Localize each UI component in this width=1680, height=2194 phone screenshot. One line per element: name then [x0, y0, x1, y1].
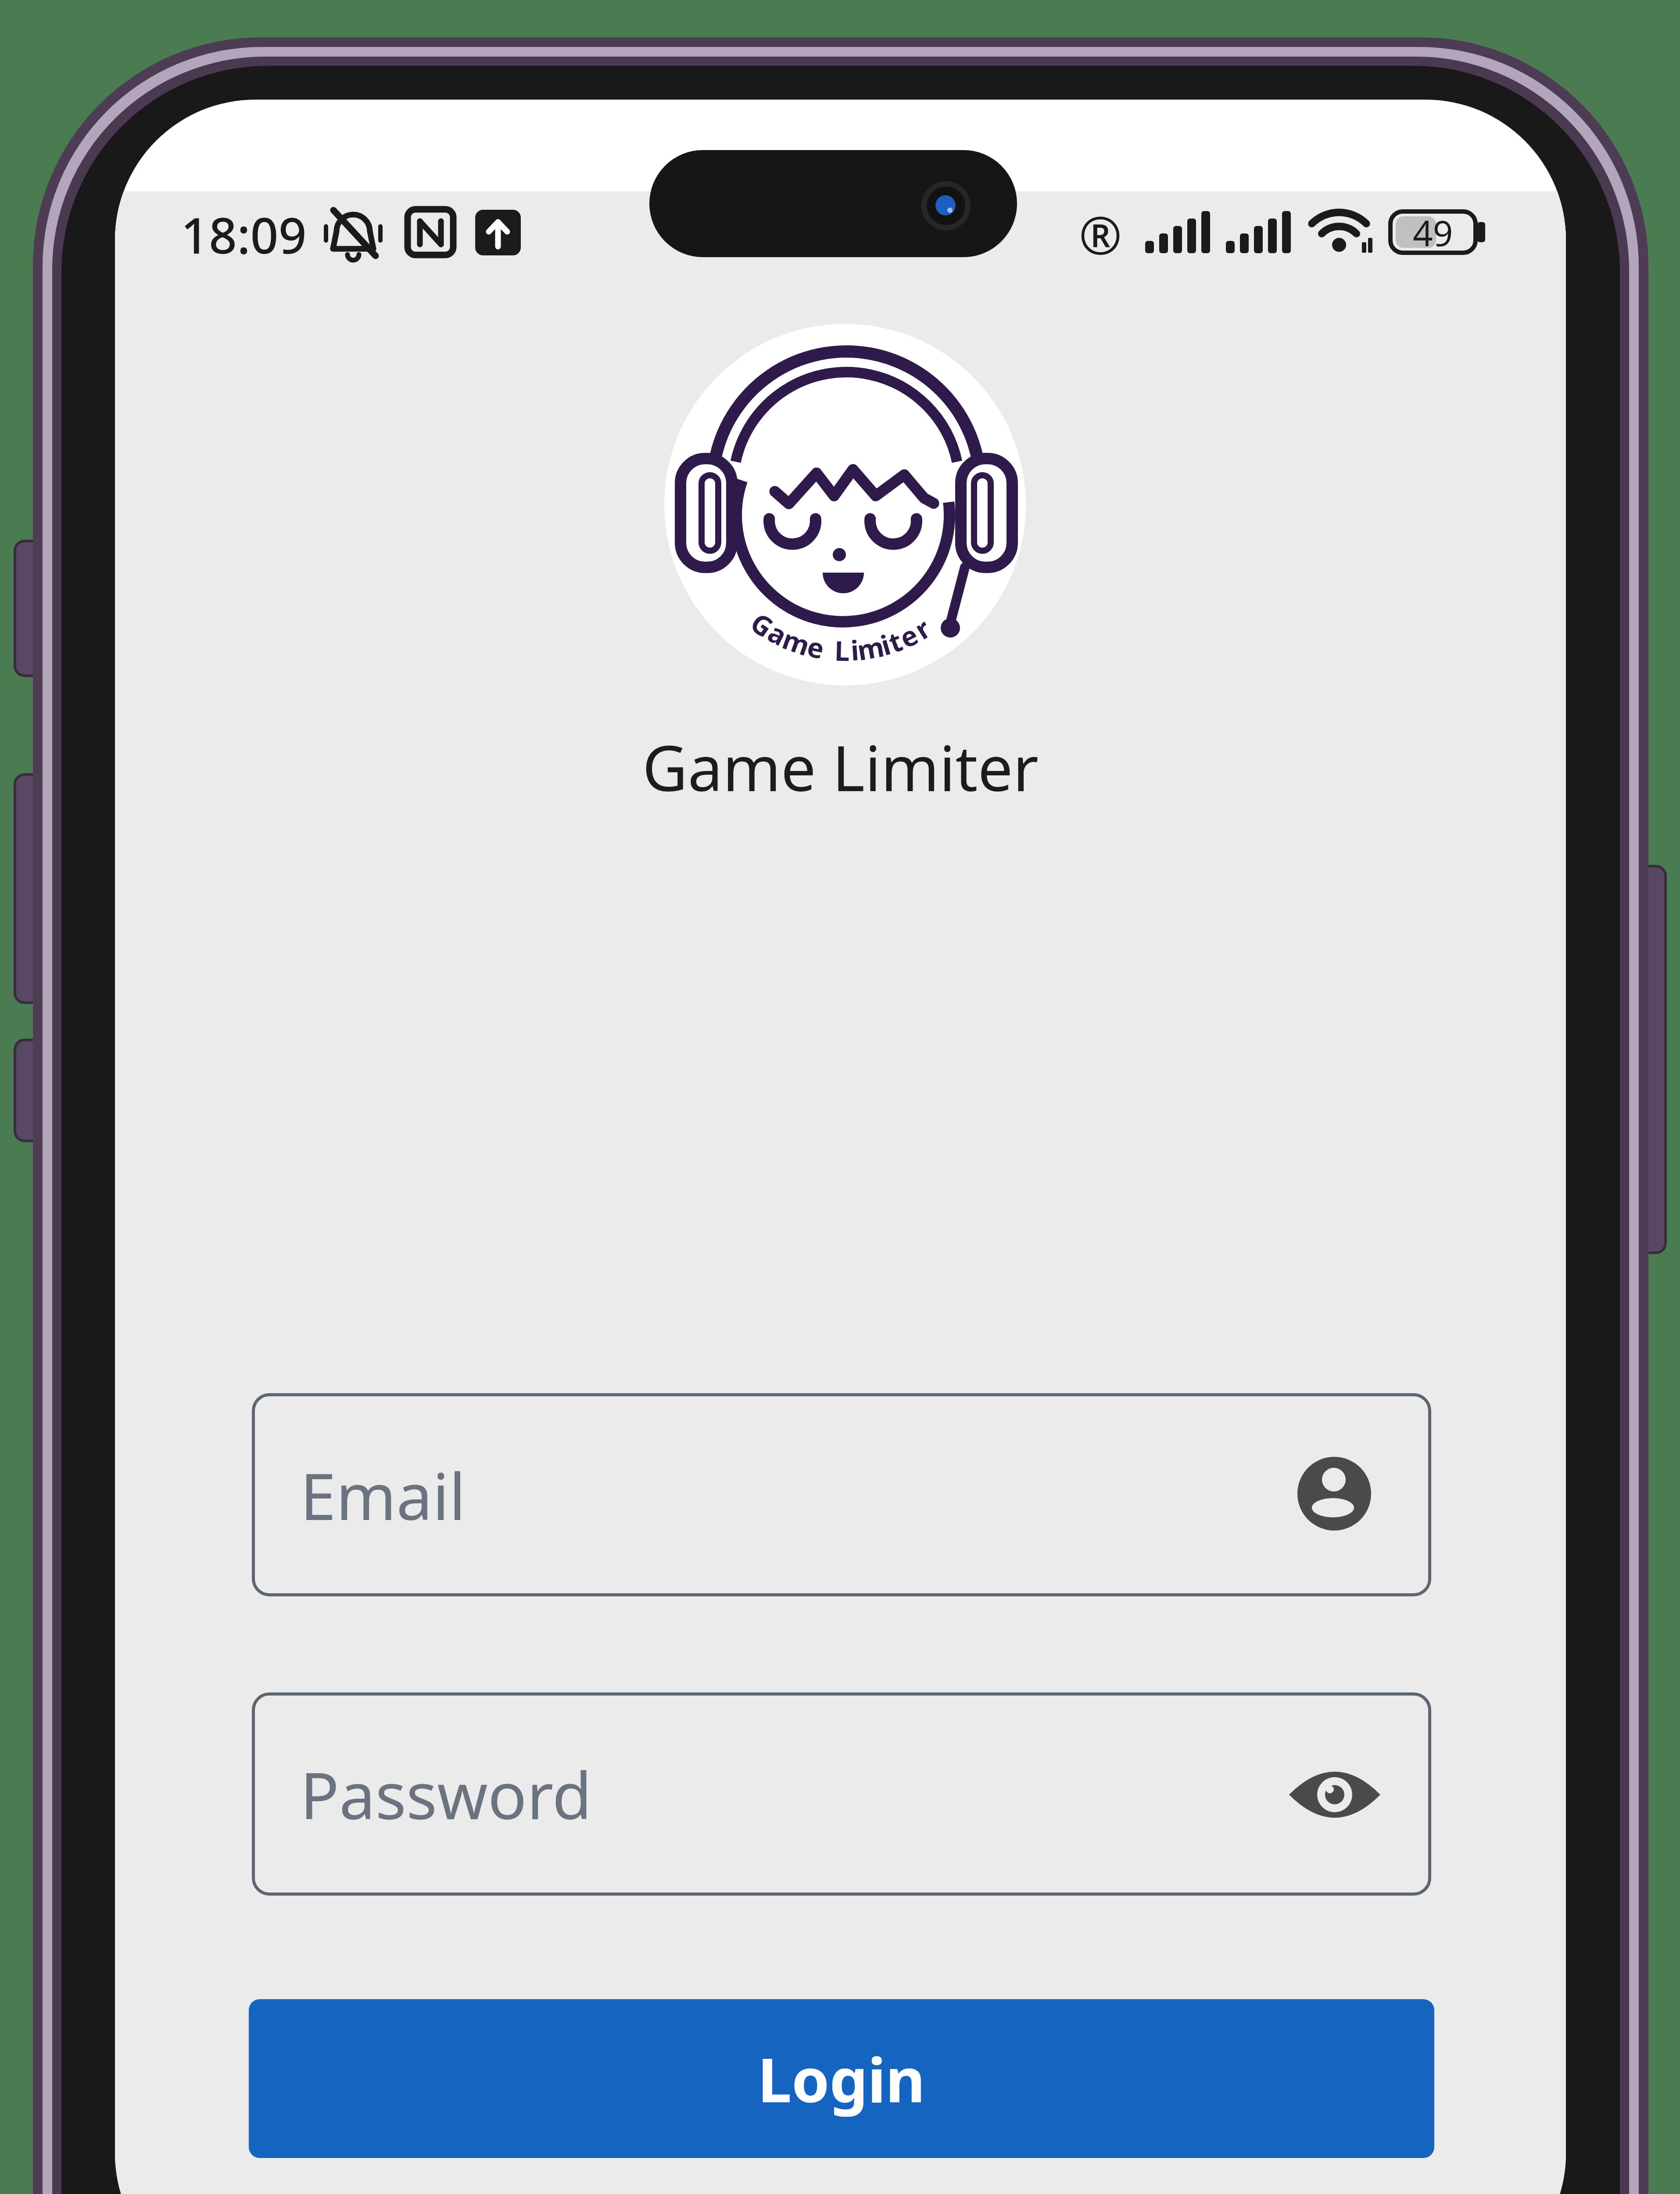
- staticText: L: [834, 632, 850, 669]
- staticText: e: [893, 616, 924, 656]
- staticText: t: [883, 622, 907, 661]
- staticText: Email: [300, 1451, 466, 1539]
- staticText: i: [850, 631, 860, 669]
- staticText: Password: [300, 1750, 592, 1838]
- staticText: 49: [1413, 208, 1453, 256]
- staticText: Game Limiter: [642, 724, 1039, 809]
- staticText: e: [804, 628, 828, 667]
- staticText: r: [907, 609, 937, 647]
- staticText: i: [877, 626, 895, 663]
- staticText: m: [778, 620, 815, 664]
- button[interactable]: Email: [252, 1393, 1431, 1596]
- staticText: ®: [1079, 199, 1122, 269]
- button[interactable]: Password: [252, 1692, 1431, 1896]
- button[interactable]: Login: [249, 1999, 1434, 2158]
- staticText: a: [762, 613, 794, 654]
- staticText: 18:09: [181, 201, 307, 268]
- staticText: m: [854, 628, 887, 669]
- staticText: Login: [758, 2037, 925, 2120]
- staticText: G: [744, 604, 781, 645]
